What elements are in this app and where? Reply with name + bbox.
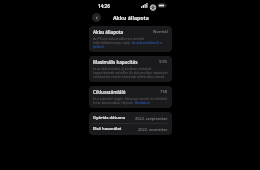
staticText: 2022. szeptember — [135, 116, 168, 121]
button[interactable]: Gyártás dátuma — [89, 112, 172, 135]
staticText: Ez a számláló rögzíti, hányszor merült é… — [93, 97, 168, 105]
staticText: Normál — [153, 29, 168, 35]
staticText: 93% — [159, 59, 168, 65]
staticText: 2022. november — [138, 127, 168, 132]
staticText: Akku állapota — [113, 14, 149, 21]
staticText: Az iPhone akkumulátora a normál teljesít… — [93, 37, 168, 49]
staticText: Maximális kapacitás — [93, 59, 138, 65]
button[interactable]: Akku állapota — [89, 26, 172, 52]
staticText: Gyártás dátuma — [93, 115, 126, 121]
staticText: Első használat — [93, 126, 122, 132]
button[interactable]: Ciklusszámláló — [89, 86, 172, 108]
button[interactable]: Maximális kapacitás — [89, 56, 172, 82]
button[interactable]: Vissza — [92, 13, 101, 22]
staticText: Akku állapota — [93, 29, 124, 35]
staticText: Ez az akkumulátor új korában mutatott ka… — [93, 67, 168, 79]
staticText: 758 — [160, 89, 168, 95]
staticText: Ciklusszámláló — [93, 89, 126, 95]
staticText: 14:26 — [98, 3, 110, 9]
